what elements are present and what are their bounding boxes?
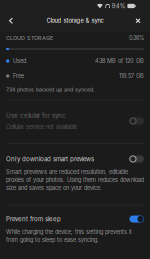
staticText: Use cellular for sync (6, 112, 66, 119)
button[interactable]: Use cellular for sync (0, 104, 150, 137)
staticText: Used (13, 58, 26, 64)
staticText: 94% (112, 2, 126, 10)
staticText: Prevent from sleep (6, 215, 61, 223)
staticText: CLOUD STORAGE (6, 35, 53, 41)
staticText: Cloud storage & sync (46, 17, 103, 24)
button[interactable]: Back (1, 12, 20, 31)
staticText: 0.36% (129, 35, 144, 41)
button[interactable]: Only download smart previews (0, 149, 150, 168)
staticText: Cellular service not available (6, 124, 77, 130)
staticText: Only download smart previews (6, 155, 94, 163)
staticText: Free (13, 73, 24, 79)
button[interactable]: Close (128, 12, 147, 31)
staticText: 438 MB of 120 GB (95, 58, 144, 64)
staticText: 119.57 GB (119, 73, 144, 79)
staticText: Smart previews are reduced resolution, e… (6, 168, 144, 191)
staticText: While charging the device, this setting … (6, 228, 132, 243)
staticText: 734 photos backed up and synced. (6, 86, 95, 93)
button[interactable]: Prevent from sleep (0, 209, 150, 228)
